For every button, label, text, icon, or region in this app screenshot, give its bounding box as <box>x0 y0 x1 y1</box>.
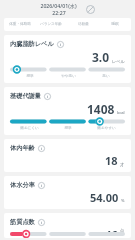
staticText: 体内年齢 <box>10 144 35 152</box>
staticText: 睡眠 <box>111 22 119 27</box>
button[interactable]: 情報 <box>38 182 45 189</box>
button[interactable]: 活動量 <box>67 18 99 31</box>
staticText: 活動量 <box>78 22 89 27</box>
staticText: 46 <box>105 227 118 234</box>
staticText: レベル <box>112 59 125 64</box>
staticText: 体重・体脂肪 <box>9 22 31 27</box>
button[interactable]: 情報 <box>44 93 51 100</box>
staticText: 筋質点数 <box>10 218 35 226</box>
staticText: 18 <box>105 153 118 168</box>
button[interactable]: バランス年齢 <box>35 18 67 31</box>
staticText: % <box>121 198 125 204</box>
staticText: 高い <box>102 74 110 79</box>
button[interactable]: 情報 <box>57 41 64 48</box>
staticText: 54.00 <box>90 190 119 205</box>
staticText: 基礎代謝量 <box>10 92 41 100</box>
staticText: 燃えにくい <box>20 126 39 131</box>
button[interactable]: 内臓脂肪レベル <box>4 35 131 83</box>
staticText: 点 <box>120 228 125 233</box>
button[interactable]: 体水分率 <box>4 176 131 209</box>
button[interactable]: 基礎代謝量 <box>4 87 131 135</box>
button[interactable]: 情報 <box>38 219 45 226</box>
button[interactable]: 筋質点数 <box>4 213 131 238</box>
staticText: 燃えやすい <box>97 126 116 131</box>
staticText: kcal <box>117 110 125 116</box>
staticText: 体水分率 <box>10 181 35 189</box>
staticText: 2026/04/01(水) <box>40 2 77 9</box>
button[interactable]: 編集 <box>85 4 96 15</box>
button[interactable]: 情報 <box>38 145 45 152</box>
staticText: バランス年齢 <box>40 22 62 27</box>
staticText: 内臓脂肪レベル <box>10 40 54 48</box>
staticText: 1408 <box>87 101 115 117</box>
staticText: 才 <box>120 162 125 167</box>
button[interactable]: 睡眠 <box>99 18 131 31</box>
staticText: 標準 <box>64 126 72 131</box>
button[interactable]: 体内年齢 <box>4 139 131 172</box>
staticText: やや高い <box>61 74 76 79</box>
button[interactable]: 体重・体脂肪 <box>4 18 35 31</box>
staticText: 標準 <box>26 74 34 79</box>
staticText: 3.0 <box>92 49 110 65</box>
staticText: 22:27 <box>52 9 66 16</box>
